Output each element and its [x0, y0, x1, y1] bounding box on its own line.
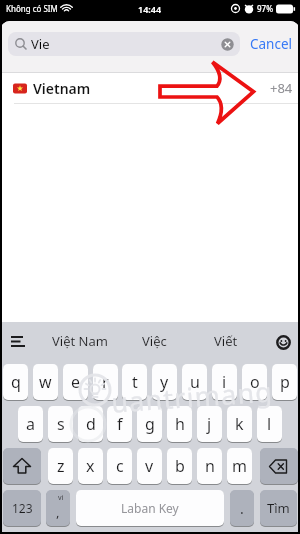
button[interactable]: y: [152, 364, 177, 400]
staticText: o: [250, 371, 260, 393]
staticText: Vietnam: [33, 79, 91, 98]
staticText: f: [117, 413, 123, 435]
button[interactable]: j: [197, 406, 222, 442]
staticText: k: [235, 413, 244, 435]
staticText: Tìm: [267, 499, 290, 517]
button[interactable]: m: [227, 448, 252, 484]
staticText: Viết: [214, 332, 238, 350]
button[interactable]: p: [272, 364, 297, 400]
button[interactable]: s: [48, 406, 73, 442]
button[interactable]: [268, 324, 298, 360]
button[interactable]: o: [242, 364, 267, 400]
button[interactable]: [2, 322, 34, 360]
staticText: x: [86, 455, 95, 477]
button[interactable]: k: [227, 406, 252, 442]
button[interactable]: f: [107, 406, 132, 442]
button[interactable]: Viết: [196, 322, 256, 360]
staticText: +84: [270, 79, 293, 97]
staticText: i: [222, 371, 227, 393]
staticText: 97%: [257, 3, 273, 14]
button[interactable]: n: [197, 448, 222, 484]
staticText: a: [26, 413, 35, 435]
staticText: y: [160, 371, 169, 393]
button[interactable]: w: [33, 364, 58, 400]
staticText: 123: [12, 500, 33, 516]
button[interactable]: t: [122, 364, 147, 400]
button[interactable]: 123: [3, 490, 41, 526]
button[interactable]: Cancel: [248, 32, 294, 56]
staticText: Việc: [142, 332, 167, 350]
staticText: j: [207, 413, 212, 435]
button[interactable]: c: [107, 448, 132, 484]
staticText: Laban Key: [121, 500, 179, 516]
button[interactable]: Việt Nam: [40, 322, 120, 360]
button[interactable]: vi: [46, 490, 70, 526]
button[interactable]: e: [63, 364, 88, 400]
staticText: Vie: [31, 35, 50, 53]
button[interactable]: Laban Key: [76, 490, 224, 526]
button[interactable]: Vietnam: [0, 73, 300, 103]
button[interactable]: a: [18, 406, 43, 442]
button[interactable]: u: [182, 364, 207, 400]
button[interactable]: [221, 38, 234, 51]
staticText: Việt Nam: [52, 332, 108, 350]
staticText: s: [57, 413, 65, 435]
button[interactable]: .: [230, 490, 254, 526]
button[interactable]: [260, 448, 298, 484]
staticText: p: [280, 371, 290, 393]
button[interactable]: v: [137, 448, 162, 484]
button[interactable]: z: [48, 448, 73, 484]
staticText: 14:44: [138, 3, 162, 15]
staticText: b: [175, 455, 185, 477]
staticText: u: [190, 371, 200, 393]
button[interactable]: b: [167, 448, 192, 484]
staticText: t: [132, 371, 138, 393]
staticText: g: [145, 413, 155, 435]
staticText: vi: [58, 493, 64, 503]
button[interactable]: x: [78, 448, 103, 484]
staticText: q: [11, 371, 21, 393]
button[interactable]: d: [78, 406, 103, 442]
staticText: Không có SIM: [6, 3, 58, 14]
staticText: uantrimang: [110, 372, 275, 421]
staticText: d: [86, 413, 96, 435]
button[interactable]: Tìm: [260, 490, 297, 526]
staticText: e: [71, 371, 81, 393]
staticText: m: [232, 455, 247, 477]
staticText: Cancel: [250, 35, 293, 53]
button[interactable]: Vie: [8, 32, 240, 56]
button[interactable]: i: [212, 364, 237, 400]
button[interactable]: [3, 448, 41, 484]
button[interactable]: q: [3, 364, 28, 400]
staticText: h: [175, 413, 185, 435]
staticText: c: [116, 455, 124, 477]
staticText: w: [39, 371, 52, 393]
staticText: ,: [56, 503, 60, 521]
button[interactable]: g: [137, 406, 162, 442]
staticText: n: [205, 455, 215, 477]
staticText: z: [57, 455, 65, 477]
button[interactable]: Việc: [124, 322, 184, 360]
staticText: r: [102, 371, 109, 393]
staticText: v: [145, 455, 154, 477]
button[interactable]: h: [167, 406, 192, 442]
button[interactable]: l: [257, 406, 282, 442]
staticText: .: [240, 499, 244, 518]
staticText: l: [267, 413, 272, 435]
button[interactable]: r: [93, 364, 118, 400]
